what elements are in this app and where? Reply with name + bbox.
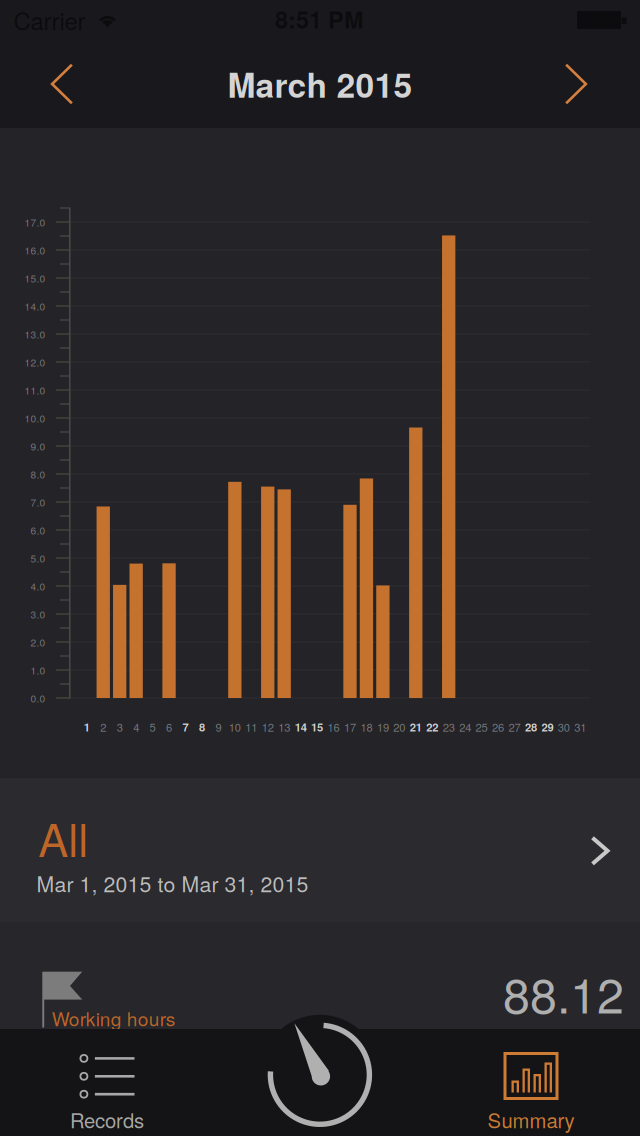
staticText: 11 — [245, 719, 257, 735]
button[interactable]: All — [0, 778, 640, 922]
staticText: Carrier — [13, 3, 85, 37]
staticText: 15 — [311, 719, 323, 735]
staticText: 13.0 — [24, 327, 45, 341]
staticText: 27 — [508, 719, 520, 735]
staticText: 20 — [393, 719, 405, 735]
staticText: 12.0 — [24, 355, 45, 369]
staticText: 3.0 — [30, 607, 45, 621]
staticText: 17 — [344, 719, 356, 735]
staticText: 13 — [278, 719, 290, 735]
staticText: Mar 1, 2015 to Mar 31, 2015 — [36, 868, 308, 898]
staticText: 25 — [476, 719, 488, 735]
staticText: All — [38, 805, 88, 870]
staticText: 2.0 — [30, 635, 45, 649]
staticText: 6 — [166, 719, 172, 735]
button[interactable]: Previous month — [7, 40, 117, 128]
staticText: March 2015 — [227, 60, 412, 108]
staticText: 15.0 — [24, 271, 45, 285]
staticText: 22 — [426, 719, 438, 735]
staticText: 19 — [377, 719, 389, 735]
staticText: 2 — [100, 719, 106, 735]
staticText: 30 — [558, 719, 570, 735]
staticText: 8 — [199, 719, 205, 735]
staticText: 3 — [117, 719, 123, 735]
button[interactable]: Summary — [0, 1029, 640, 1136]
staticText: 28 — [525, 719, 537, 735]
staticText: 5 — [150, 719, 156, 735]
staticText: 18 — [360, 719, 372, 735]
staticText: 21 — [410, 719, 422, 735]
staticText: 7.0 — [30, 495, 45, 509]
staticText: 31 — [574, 719, 586, 735]
staticText: 11.0 — [24, 383, 45, 397]
staticText: 29 — [541, 719, 553, 735]
staticText: 14.0 — [24, 299, 45, 313]
staticText: 26 — [492, 719, 504, 735]
staticText: 7 — [182, 719, 188, 735]
staticText: 9.0 — [30, 439, 45, 453]
staticText: 4 — [133, 719, 139, 735]
staticText: 8.0 — [30, 467, 45, 481]
staticText: 1 — [84, 719, 90, 735]
button[interactable]: Next month — [521, 40, 631, 128]
button[interactable]: Records — [0, 1029, 213, 1136]
staticText: 6.0 — [30, 523, 45, 537]
staticText: 10 — [229, 719, 241, 735]
staticText: Records — [70, 1105, 144, 1134]
staticText: 10.0 — [24, 411, 45, 425]
staticText: Summary — [487, 1105, 574, 1134]
button[interactable]: Start timer — [260, 1015, 380, 1135]
staticText: Working hours — [52, 1004, 176, 1032]
staticText: 4.0 — [30, 579, 45, 593]
staticText: 23 — [443, 719, 455, 735]
staticText: 9 — [215, 719, 221, 735]
staticText: 24 — [459, 719, 471, 735]
staticText: 5.0 — [30, 551, 45, 565]
staticText: 16 — [328, 719, 340, 735]
staticText: 1.0 — [30, 663, 45, 677]
staticText: 0.0 — [30, 691, 45, 705]
staticText: 88.12 — [503, 958, 624, 1027]
staticText: 17.0 — [24, 215, 45, 229]
staticText: 16.0 — [24, 243, 45, 257]
staticText: 14 — [295, 719, 307, 735]
staticText: 8:51 PM — [275, 2, 363, 36]
staticText: 12 — [262, 719, 274, 735]
